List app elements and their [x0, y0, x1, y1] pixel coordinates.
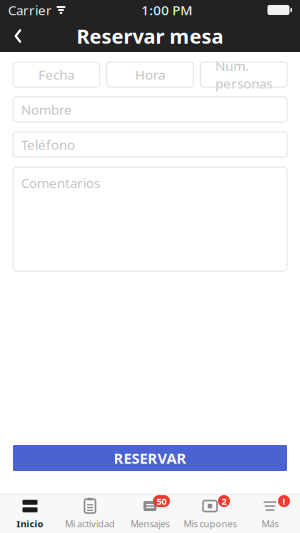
staticText: Carrier	[8, 1, 52, 19]
staticText: Teléfono	[21, 136, 75, 153]
button[interactable]: Fecha	[13, 62, 100, 87]
staticText: Mis cupones	[183, 518, 236, 530]
button[interactable]: 50	[120, 495, 180, 533]
button[interactable]: Hora	[107, 62, 193, 87]
staticText: Reservar mesa	[76, 23, 223, 49]
button[interactable]: Back	[0, 20, 36, 52]
staticText: Más	[261, 518, 278, 530]
staticText: 1:00 PM	[141, 1, 192, 19]
button[interactable]: Mi actividad	[60, 495, 120, 533]
staticText: 2	[221, 495, 226, 507]
staticText: Comentarios	[21, 174, 100, 192]
staticText: !	[282, 495, 285, 507]
staticText: Nombre	[21, 101, 72, 118]
button[interactable]: 2	[180, 495, 240, 533]
staticText: Inicio	[16, 518, 43, 530]
staticText: Num. personas	[215, 57, 272, 92]
button[interactable]: Nombre	[13, 97, 287, 122]
button[interactable]: Teléfono	[13, 132, 287, 157]
button[interactable]: Inicio	[0, 495, 60, 533]
button[interactable]: !	[240, 495, 300, 533]
staticText: RESERVAR	[113, 448, 186, 468]
button[interactable]: Num. personas	[200, 62, 287, 87]
button[interactable]: RESERVAR	[13, 445, 287, 471]
staticText: Fecha	[38, 66, 74, 83]
staticText: 50	[156, 495, 166, 507]
staticText: Mi actividad	[65, 518, 115, 530]
button[interactable]: Comentarios	[13, 167, 287, 271]
staticText: Mensajes	[130, 518, 169, 530]
staticText: Hora	[135, 66, 165, 83]
